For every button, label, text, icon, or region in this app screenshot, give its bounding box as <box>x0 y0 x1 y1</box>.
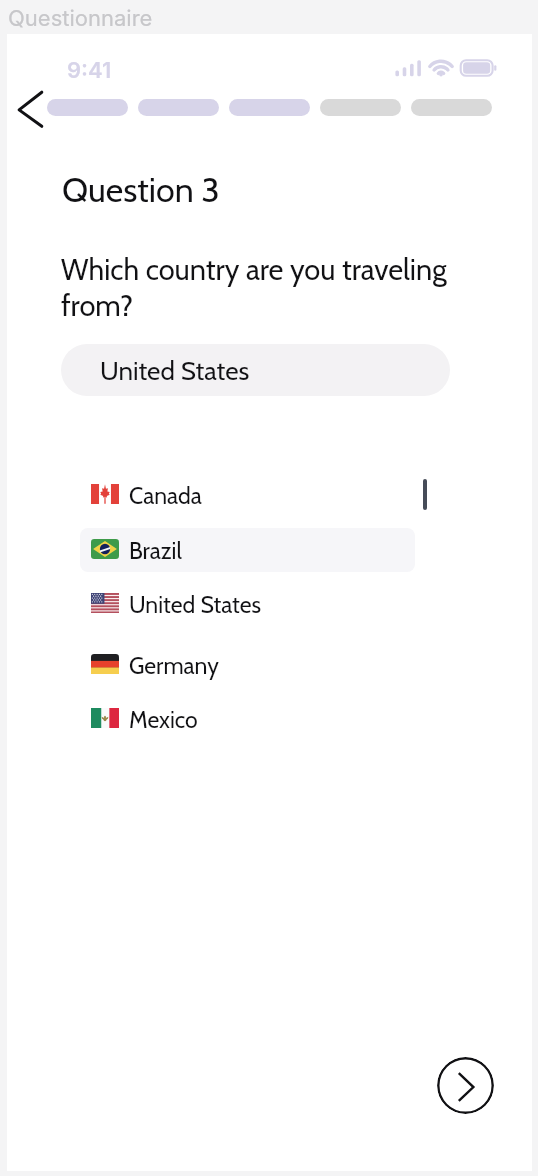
staticText: Mexico <box>129 706 198 734</box>
button[interactable]: Germany <box>80 642 415 686</box>
button[interactable]: United States <box>61 344 450 396</box>
button[interactable]: Canada <box>80 472 415 516</box>
button[interactable]: United States <box>80 581 415 625</box>
staticText: Questionnaire <box>8 5 153 32</box>
staticText: 9:41 <box>67 57 112 84</box>
button[interactable]: Back <box>13 87 51 135</box>
button[interactable]: Brazil <box>80 527 415 571</box>
staticText: Canada <box>129 482 202 510</box>
button[interactable]: Next question <box>437 1057 494 1114</box>
staticText: Germany <box>129 652 219 680</box>
staticText: United States <box>129 591 261 619</box>
staticText: Question 3 <box>62 169 220 210</box>
staticText: United States <box>100 355 250 387</box>
staticText: Brazil <box>129 537 182 565</box>
staticText: Which country are you traveling from? <box>61 252 447 323</box>
button[interactable]: Mexico <box>80 696 415 740</box>
